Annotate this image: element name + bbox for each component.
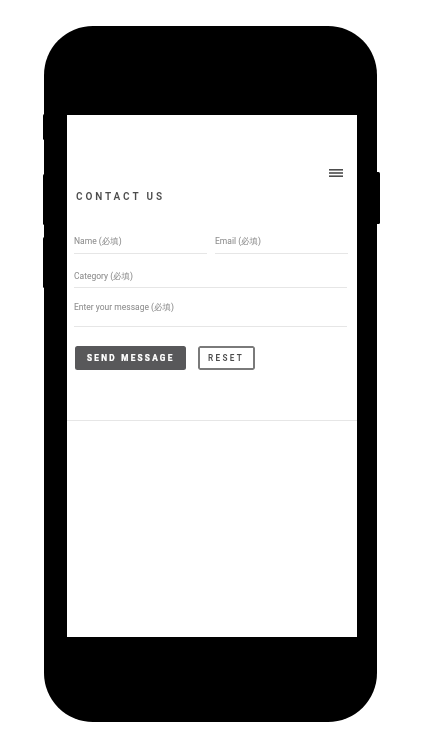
staticText: CONTACT US	[76, 191, 166, 203]
staticText: Enter your message (必填)	[74, 302, 174, 313]
staticText: Name (必填)	[74, 236, 122, 247]
button[interactable]: Menu	[324, 163, 349, 183]
button[interactable]: RESET	[198, 346, 255, 370]
button[interactable]: SEND MESSAGE	[75, 346, 186, 370]
staticText: RESET	[208, 353, 245, 363]
staticText: Category (必填)	[74, 271, 134, 282]
staticText: SEND MESSAGE	[87, 353, 175, 363]
staticText: Email (必填)	[215, 236, 262, 247]
